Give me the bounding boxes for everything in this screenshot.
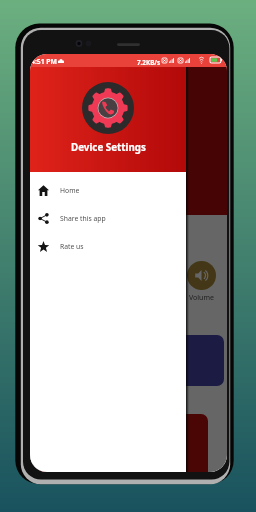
button[interactable]: Volume — [187, 261, 216, 290]
staticText: Rate us — [60, 242, 84, 251]
staticText: 4:51 PM — [31, 57, 57, 66]
other: Share this app — [38, 213, 49, 224]
button[interactable]: Rate us — [30, 232, 186, 260]
button[interactable]: Home — [30, 176, 186, 204]
button[interactable] — [39, 414, 208, 472]
staticText: 7.2KB/s — [137, 58, 161, 67]
other: Rate us — [38, 241, 49, 252]
button[interactable]: Share this app — [30, 204, 186, 232]
staticText: Home — [60, 186, 80, 195]
button[interactable] — [39, 335, 224, 386]
staticText: Device Settings — [71, 141, 146, 154]
staticText: Volume — [189, 293, 214, 303]
staticText: Share this app — [60, 214, 106, 223]
other: Home — [38, 185, 49, 196]
